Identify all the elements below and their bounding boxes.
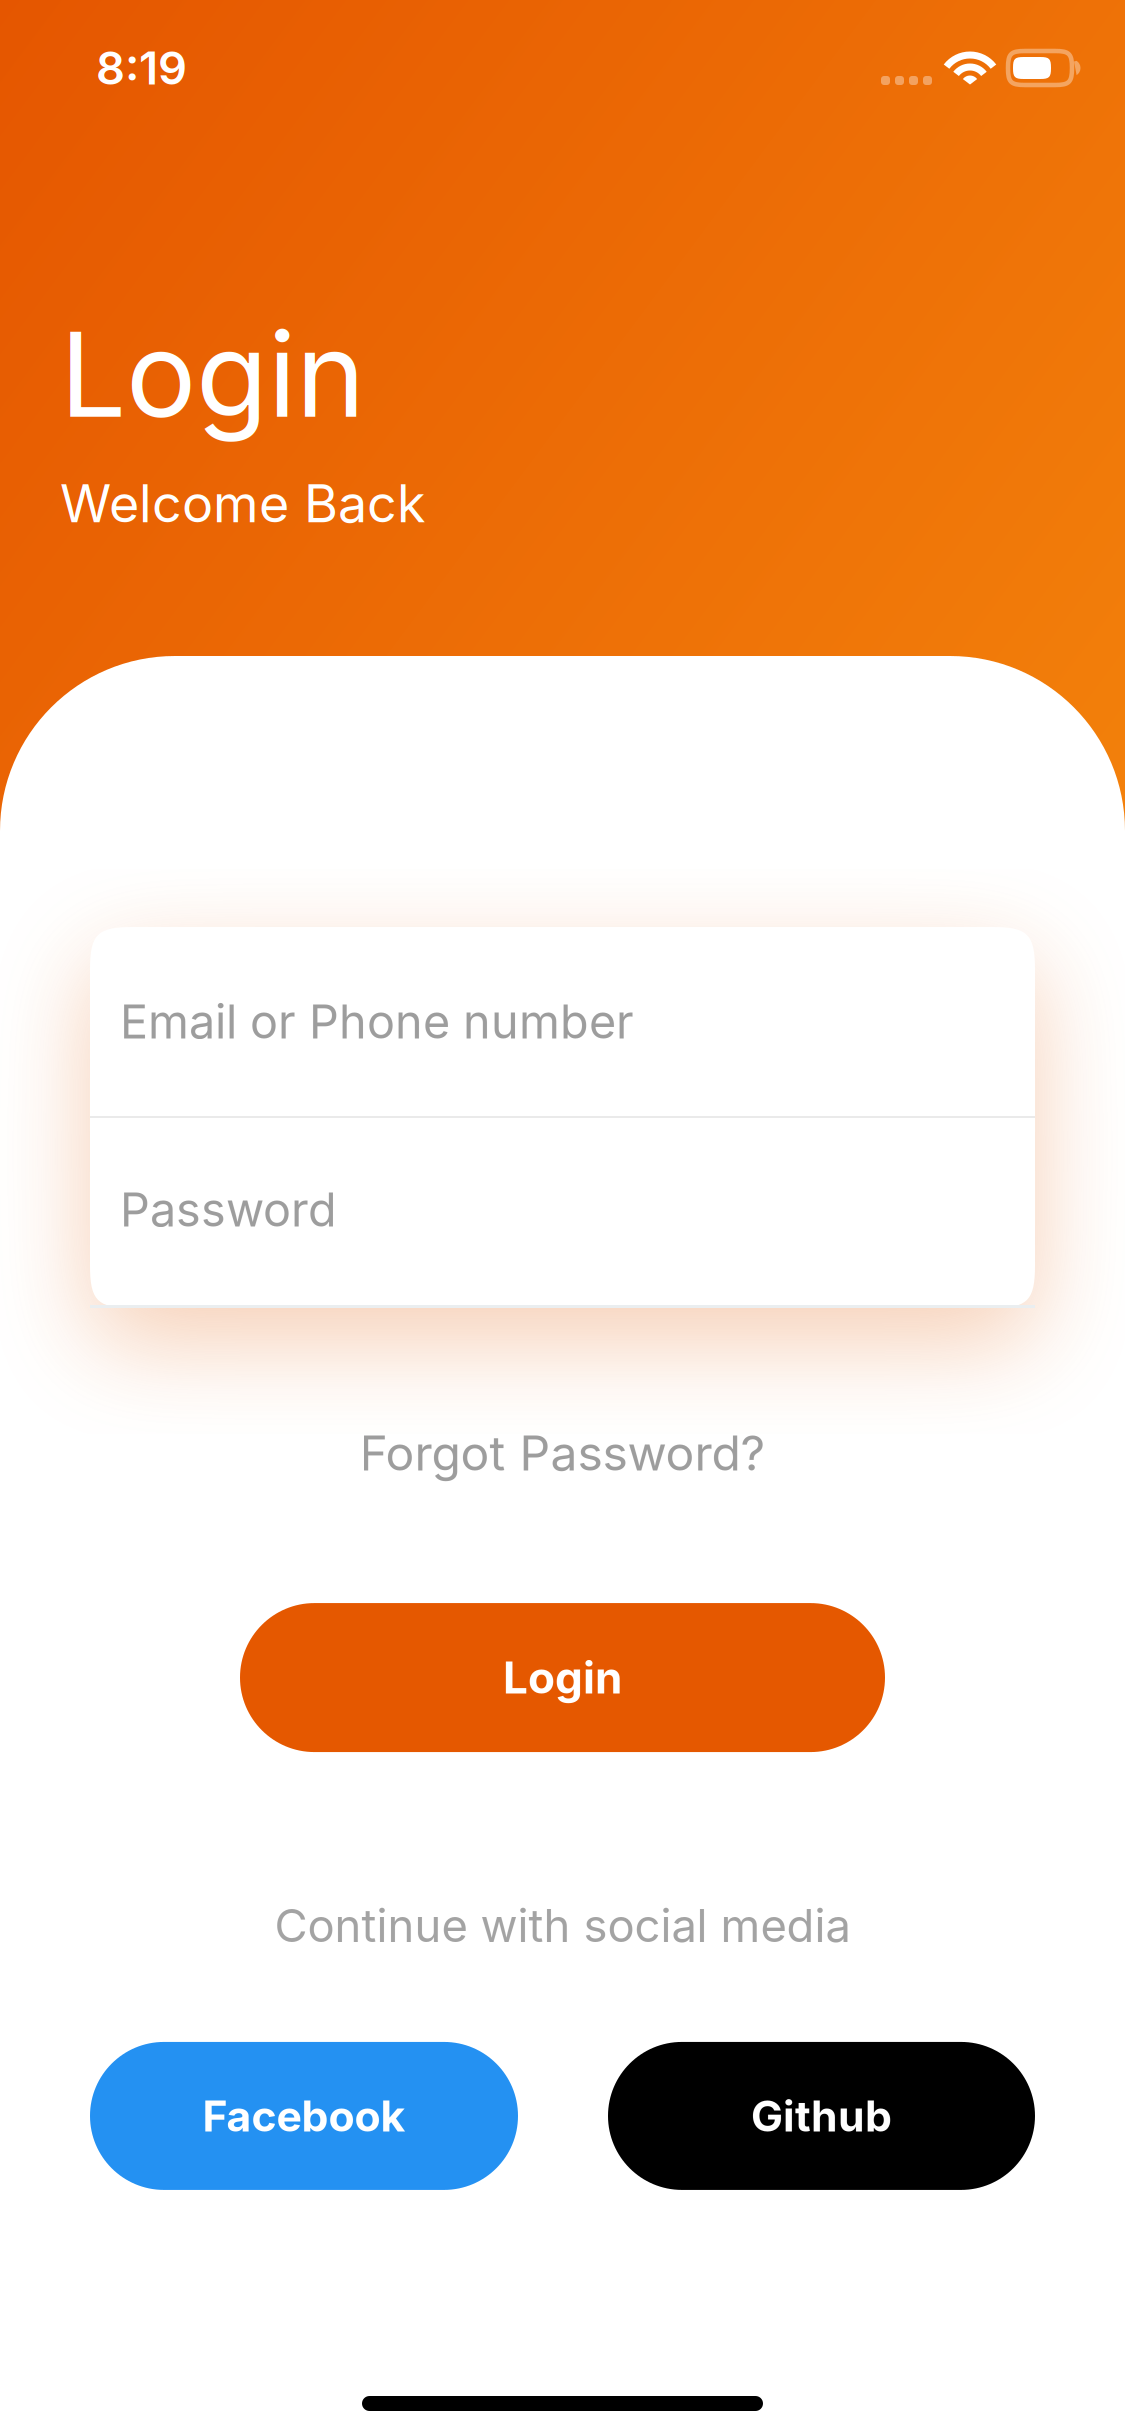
staticText: Welcome Back bbox=[60, 472, 426, 535]
staticText: Forgot Password? bbox=[359, 1424, 765, 1482]
staticText: Github bbox=[751, 2090, 892, 2142]
staticText: Continue with social media bbox=[274, 1898, 850, 1953]
button[interactable]: Email or Phone number bbox=[90, 927, 1035, 1116]
button[interactable]: Password bbox=[90, 1118, 1035, 1305]
button[interactable]: Facebook bbox=[90, 2042, 518, 2190]
staticText: Password bbox=[120, 1181, 337, 1238]
staticText: Email or Phone number bbox=[120, 993, 634, 1050]
staticText: Facebook bbox=[202, 2090, 405, 2142]
button[interactable]: Forgot Password? bbox=[359, 1424, 765, 1482]
button[interactable]: Github bbox=[608, 2042, 1035, 2190]
staticText: Login bbox=[503, 1651, 622, 1704]
staticText: 8:19 bbox=[96, 41, 187, 95]
button[interactable]: Login bbox=[240, 1603, 885, 1752]
staticText: Login bbox=[60, 303, 365, 445]
